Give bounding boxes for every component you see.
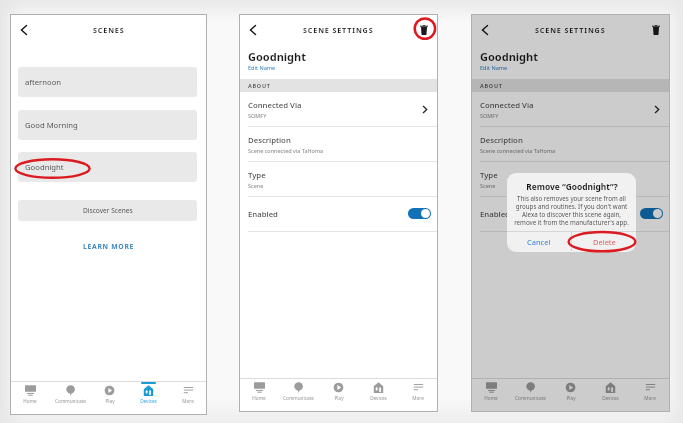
- staticText: Devices: [602, 395, 619, 401]
- button[interactable]: Delete: [416, 22, 432, 38]
- staticText: Communicate: [55, 398, 86, 404]
- button[interactable]: Connected Via: [239, 92, 438, 126]
- staticText: Edit Name: [480, 64, 508, 72]
- staticText: Scene: [248, 182, 264, 189]
- staticText: Goodnight: [480, 49, 538, 64]
- button[interactable]: Home: [471, 379, 510, 412]
- button[interactable]: Devices: [129, 382, 168, 415]
- staticText: Edit Name: [248, 64, 276, 72]
- button[interactable]: Back: [14, 20, 33, 39]
- staticText: ABOUT: [248, 82, 271, 89]
- staticText: ABOUT: [480, 82, 503, 89]
- staticText: More: [412, 395, 424, 401]
- button[interactable]: Type: [239, 162, 438, 196]
- button[interactable]: afternoon: [18, 67, 197, 97]
- staticText: Connected Via: [480, 100, 534, 111]
- button[interactable]: Description: [239, 127, 438, 161]
- staticText: Home: [484, 395, 498, 401]
- button[interactable]: More: [630, 379, 670, 412]
- staticText: Type: [480, 170, 498, 181]
- button[interactable]: Play: [550, 379, 590, 412]
- button[interactable]: Enabled: [471, 197, 670, 231]
- button[interactable]: Delete: [572, 232, 636, 251]
- staticText: Play: [566, 395, 576, 401]
- staticText: Goodnight: [25, 162, 64, 172]
- staticText: Description: [248, 135, 291, 146]
- button[interactable]: Play: [318, 379, 358, 412]
- staticText: Type: [248, 170, 266, 181]
- staticText: Communicate: [283, 395, 314, 401]
- staticText: SCENE SETTINGS: [303, 25, 374, 35]
- staticText: Home: [23, 398, 37, 404]
- button[interactable]: Communicate: [50, 382, 90, 415]
- button[interactable]: Connected Via: [471, 92, 670, 126]
- button[interactable]: Description: [471, 127, 670, 161]
- button[interactable]: Enabled: [239, 197, 438, 231]
- button[interactable]: Edit Name: [248, 64, 276, 72]
- button[interactable]: Delete: [648, 22, 664, 38]
- button[interactable]: Back: [243, 20, 262, 39]
- staticText: Home: [252, 395, 266, 401]
- staticText: Delete: [593, 237, 616, 247]
- staticText: Devices: [140, 398, 157, 404]
- button[interactable]: LEARN MORE: [77, 240, 141, 253]
- button[interactable]: Play: [90, 382, 129, 415]
- button[interactable]: Home: [10, 382, 50, 415]
- button[interactable]: More: [398, 379, 438, 412]
- staticText: More: [644, 395, 656, 401]
- button[interactable]: Home: [239, 379, 278, 412]
- staticText: afternoon: [25, 77, 62, 87]
- staticText: Good Morning: [25, 120, 78, 130]
- staticText: Play: [334, 395, 344, 401]
- staticText: Scene connected via TaHoma: [248, 147, 324, 154]
- button[interactable]: Cancel: [507, 232, 571, 251]
- staticText: SOMFY: [248, 112, 267, 119]
- staticText: LEARN MORE: [83, 242, 135, 251]
- button[interactable]: Type: [471, 162, 670, 196]
- staticText: Scene: [480, 182, 496, 189]
- staticText: SCENES: [93, 25, 125, 35]
- staticText: SOMFY: [480, 112, 499, 119]
- staticText: SCENE SETTINGS: [535, 25, 606, 35]
- staticText: Play: [105, 398, 115, 404]
- staticText: More: [182, 398, 194, 404]
- staticText: Cancel: [527, 237, 551, 247]
- staticText: This also removes your scene from all gr…: [514, 194, 629, 226]
- staticText: Communicate: [515, 395, 546, 401]
- button[interactable]: Back: [475, 20, 494, 39]
- staticText: Enabled: [480, 209, 510, 220]
- button[interactable]: Discover Scenes: [18, 200, 197, 221]
- staticText: Description: [480, 135, 523, 146]
- button[interactable]: Devices: [590, 379, 630, 412]
- button[interactable]: More: [168, 382, 207, 415]
- staticText: Devices: [370, 395, 387, 401]
- staticText: Enabled: [248, 209, 278, 220]
- staticText: Discover Scenes: [83, 206, 133, 215]
- staticText: Scene connected via TaHoma: [480, 147, 556, 154]
- button[interactable]: Communicate: [278, 379, 318, 412]
- button[interactable]: Good Morning: [18, 110, 197, 140]
- staticText: Connected Via: [248, 100, 302, 111]
- button[interactable]: Communicate: [510, 379, 550, 412]
- button[interactable]: Edit Name: [480, 64, 508, 72]
- staticText: Goodnight: [248, 49, 306, 64]
- button[interactable]: Devices: [358, 379, 398, 412]
- button[interactable]: Goodnight: [18, 152, 197, 182]
- staticText: Remove “Goodnight”?: [526, 181, 618, 192]
